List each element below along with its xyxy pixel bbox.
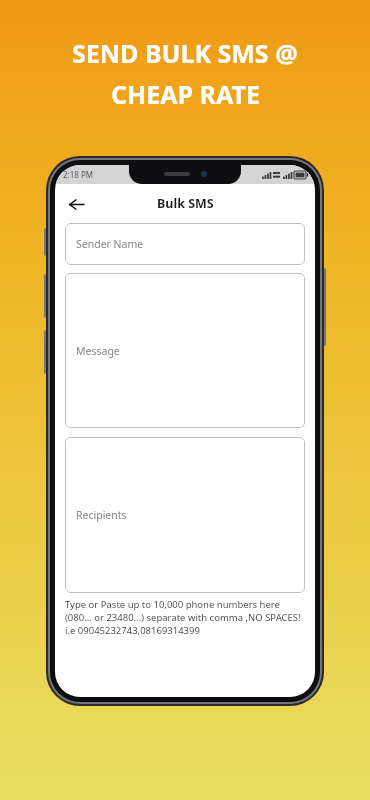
staticText: Bulk SMS: [157, 195, 214, 212]
staticText: Type or Paste up to 10,000 phone numbers…: [65, 598, 305, 637]
button[interactable]: Sender Name: [65, 223, 305, 265]
button[interactable]: Message: [65, 273, 305, 428]
staticText: CHEAP RATE: [111, 77, 260, 111]
button[interactable]: Recipients: [65, 437, 305, 593]
staticText: SEND BULK SMS @: [72, 36, 298, 70]
staticText: 2:18 PM: [63, 169, 94, 180]
staticText: Sender Name: [76, 237, 144, 251]
button[interactable]: Back: [61, 189, 91, 219]
staticText: Message: [76, 344, 120, 358]
staticText: Recipients: [76, 508, 127, 522]
